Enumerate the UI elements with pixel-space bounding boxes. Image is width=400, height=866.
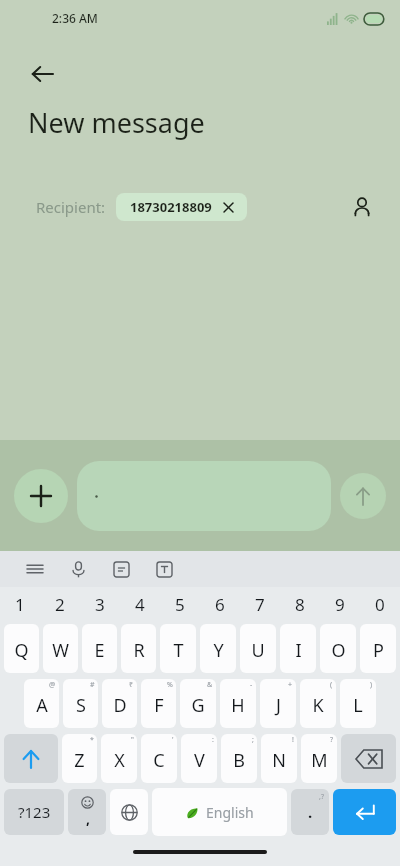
button[interactable]: ( [300,679,336,728]
button[interactable]: ,? [291,789,329,835]
button[interactable]: T [160,624,196,673]
staticText: 2 [55,593,65,616]
staticText: U [251,638,265,663]
button[interactable]: Contacts [344,189,380,225]
staticText: 3 [95,593,105,616]
staticText: % [167,680,173,690]
button[interactable]: Send [340,473,386,519]
button[interactable]: R [121,624,156,673]
staticText: O [331,638,346,663]
button[interactable]: Y [200,624,236,673]
staticText: R [133,638,145,663]
button[interactable]: Emoji [68,789,106,835]
staticText: G [191,693,205,718]
button[interactable]: Enter [333,789,396,835]
staticText: L [353,693,363,718]
button[interactable]: & [180,679,216,728]
staticText: D [113,693,127,718]
staticText: A [36,693,48,718]
button[interactable]: 7 [240,587,280,621]
button[interactable]: U [240,624,276,673]
staticText: M [311,748,328,773]
staticText: 1 [15,593,25,616]
button[interactable]: I [280,624,316,673]
button[interactable]: 6 [200,587,240,621]
button[interactable]: Q [4,624,39,673]
staticText: & [207,680,213,690]
staticText: Z [74,748,85,773]
button[interactable]: Change language [110,789,148,835]
staticText: ( [330,680,333,690]
button[interactable]: 3 [80,587,120,621]
button[interactable]: ) [340,679,376,728]
staticText: 18730218809 [130,198,212,216]
staticText: 9 [335,593,345,616]
button[interactable]: W [43,624,78,673]
staticText: ' [172,735,174,745]
button[interactable]: % [141,679,176,728]
button[interactable]: - [220,679,256,728]
button[interactable]: " [101,734,137,783]
button[interactable]: P [360,624,396,673]
staticText: ?123 [18,802,51,822]
button[interactable]: ₹ [102,679,137,728]
staticText: * [90,735,94,745]
staticText: ,? [319,792,324,802]
button[interactable]: English [152,788,287,836]
button[interactable]: Shift [4,734,58,783]
button[interactable]: O [320,624,356,673]
staticText: 2:36 AM [52,10,98,26]
staticText: , [86,809,90,828]
staticText: E [94,638,105,663]
button[interactable]: 5 [160,587,200,621]
staticText: H [231,693,245,718]
button[interactable]: # [63,679,98,728]
staticText: ) [370,680,373,690]
staticText: 0 [375,593,385,616]
staticText: K [312,693,324,718]
button[interactable]: 2 [40,587,80,621]
staticText: - [250,680,253,690]
button[interactable]: 0 [360,587,400,621]
button[interactable]: Clipboard [106,554,136,584]
staticText: . [308,802,313,822]
button[interactable]: Add attachment [14,469,68,523]
staticText: 6 [215,593,225,616]
staticText: 4 [135,593,145,616]
staticText: N [272,748,286,773]
staticText: F [154,693,164,718]
button[interactable]: ' [141,734,177,783]
staticText: 5 [175,593,185,616]
staticText: J [276,693,281,718]
staticText: English [206,803,254,822]
staticText: I [295,638,302,663]
button[interactable]: * [62,734,97,783]
staticText: Y [213,638,224,663]
button[interactable]: 18730218809 [116,193,247,221]
button[interactable]: Voice input [63,554,93,584]
staticText: S [76,693,86,718]
staticText: " [131,735,134,745]
staticText: : [212,735,214,745]
button[interactable]: + [260,679,296,728]
button[interactable]: ; [221,734,257,783]
button[interactable]: @ [24,679,59,728]
staticText: V [194,748,205,773]
button[interactable]: ? [301,734,337,783]
staticText: # [90,680,95,690]
button[interactable]: : [181,734,217,783]
button[interactable]: Back [22,54,62,94]
staticText: B [233,748,245,773]
button[interactable]: Menu [20,554,50,584]
button[interactable] [77,461,331,531]
button[interactable]: 4 [120,587,160,621]
button[interactable]: ! [261,734,297,783]
button[interactable]: Text options [149,554,179,584]
button[interactable]: Backspace [341,734,396,783]
button[interactable]: ?123 [4,789,64,835]
button[interactable]: 1 [0,587,40,621]
button[interactable]: 8 [280,587,320,621]
button[interactable]: E [82,624,117,673]
staticText: T [173,638,184,663]
button[interactable]: 9 [320,587,360,621]
